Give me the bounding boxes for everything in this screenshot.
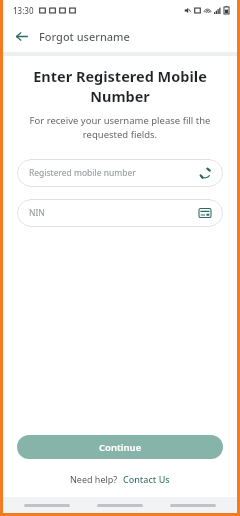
staticText: For receive your username please fill th…	[19, 114, 221, 141]
staticText: Forgot username	[39, 29, 130, 44]
button[interactable]: Back	[164, 497, 222, 513]
button[interactable]: NIN	[17, 199, 223, 227]
staticText: 13:30	[13, 5, 34, 16]
staticText: Registered mobile number	[29, 167, 199, 179]
staticText: Continue	[99, 441, 142, 454]
button[interactable]: Recents	[18, 497, 76, 513]
button[interactable]: Home	[91, 497, 149, 513]
staticText: Need help?	[70, 473, 118, 485]
button[interactable]: Registered mobile number	[17, 159, 223, 187]
button[interactable]: Continue	[17, 435, 223, 459]
staticText: Contact Us	[123, 473, 170, 485]
button[interactable]: Back	[9, 24, 33, 48]
staticText: Enter Registered Mobile Number	[9, 66, 231, 106]
staticText: NIN	[29, 207, 199, 219]
button[interactable]: Contact Us	[123, 473, 170, 485]
